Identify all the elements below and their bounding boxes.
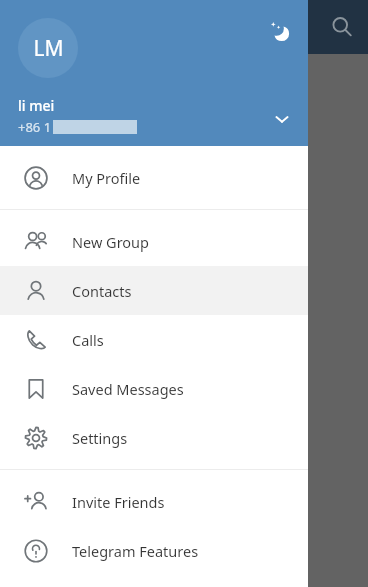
staticText: li mei (18, 96, 55, 115)
staticText: Settings (72, 428, 128, 448)
button[interactable]: Night mode (258, 10, 302, 54)
staticText: My Profile (72, 168, 141, 188)
button[interactable]: Telegram Features (0, 526, 308, 575)
button[interactable]: Expand accounts (260, 97, 304, 141)
staticText: New Group (72, 232, 149, 252)
button[interactable]: Contacts (0, 266, 308, 315)
staticText: Invite Friends (72, 492, 165, 512)
button[interactable]: Invite Friends (0, 477, 308, 526)
button[interactable]: Settings (0, 413, 308, 462)
button[interactable]: My Profile (0, 153, 308, 202)
staticText: LM (33, 34, 64, 63)
staticText: Calls (72, 330, 104, 350)
button[interactable]: New Group (0, 217, 308, 266)
button[interactable]: Saved Messages (0, 364, 308, 413)
button[interactable]: Search (320, 5, 364, 49)
staticText: Contacts (72, 281, 132, 301)
staticText: +86 1 (18, 118, 52, 136)
button[interactable]: LM (0, 0, 308, 146)
button[interactable]: Calls (0, 315, 308, 364)
staticText: Telegram Features (72, 541, 199, 561)
staticText: Saved Messages (72, 379, 184, 399)
